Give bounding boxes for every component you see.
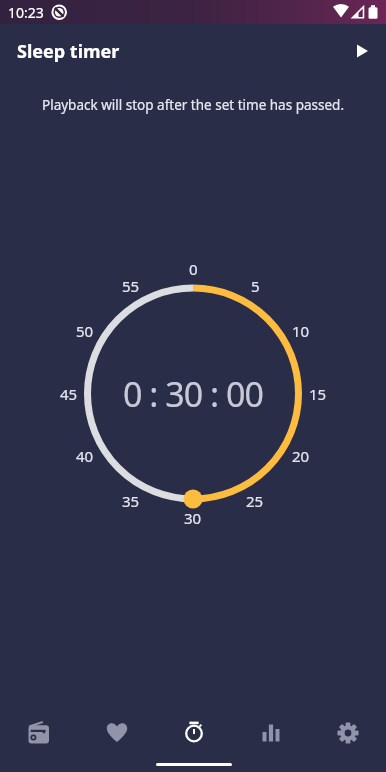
button[interactable] [155,700,232,772]
staticText: 0 : 30 : 00 [123,371,263,417]
staticText: Playback will stop after the set time ha… [0,96,386,114]
button[interactable] [309,700,386,772]
button[interactable] [232,700,309,772]
staticText: 55 [122,276,140,296]
staticText: 15 [309,384,327,404]
staticText: 10:23 [8,3,44,22]
staticText: 45 [60,384,78,404]
staticText: 5 [251,276,260,296]
staticText: 30 [184,508,202,528]
staticText: 35 [122,491,140,511]
staticText: 40 [76,446,94,466]
button[interactable] [78,700,155,772]
staticText: Sleep timer [17,39,120,64]
staticText: 50 [76,321,94,341]
staticText: 10 [292,321,310,341]
staticText: 20 [292,446,310,466]
button[interactable] [0,700,78,772]
staticText: 25 [246,491,264,511]
button[interactable] [344,35,376,67]
staticText: 0 [189,259,198,279]
